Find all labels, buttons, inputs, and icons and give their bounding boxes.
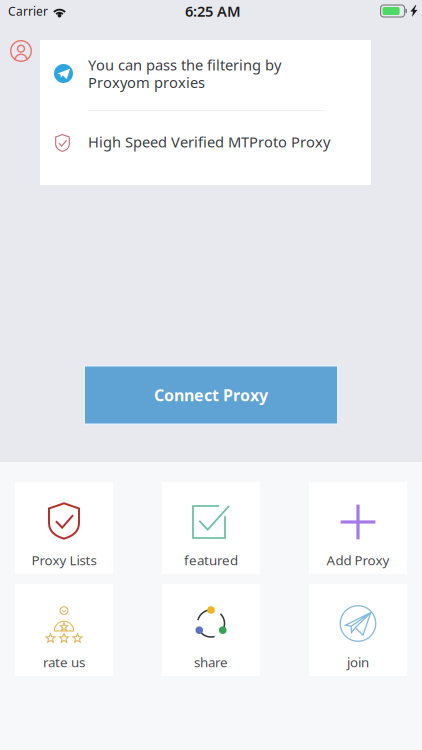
staticText: join [347,653,369,671]
staticText: Connect Proxy [154,384,268,406]
staticText: rate us [43,653,85,671]
button[interactable]: join [309,584,407,676]
staticText: featured [184,551,238,569]
staticText: Proxy Lists [31,551,96,569]
button[interactable]: Proxy Lists [15,482,113,574]
staticText: High Speed Verified MTProto Proxy [88,132,330,151]
staticText: 6:25 AM [185,1,241,21]
staticText: Carrier [8,3,48,19]
staticText: Proxyom proxies [88,72,205,92]
button[interactable]: share [162,584,260,676]
button[interactable]: Add Proxy [309,482,407,574]
button[interactable]: featured [162,482,260,574]
button[interactable]: rate us [15,584,113,676]
staticText: Add Proxy [326,551,389,569]
button[interactable]: Account [6,36,36,66]
button[interactable]: Connect Proxy [83,365,338,425]
staticText: You can pass the filtering by [88,55,281,74]
staticText: share [194,653,228,671]
